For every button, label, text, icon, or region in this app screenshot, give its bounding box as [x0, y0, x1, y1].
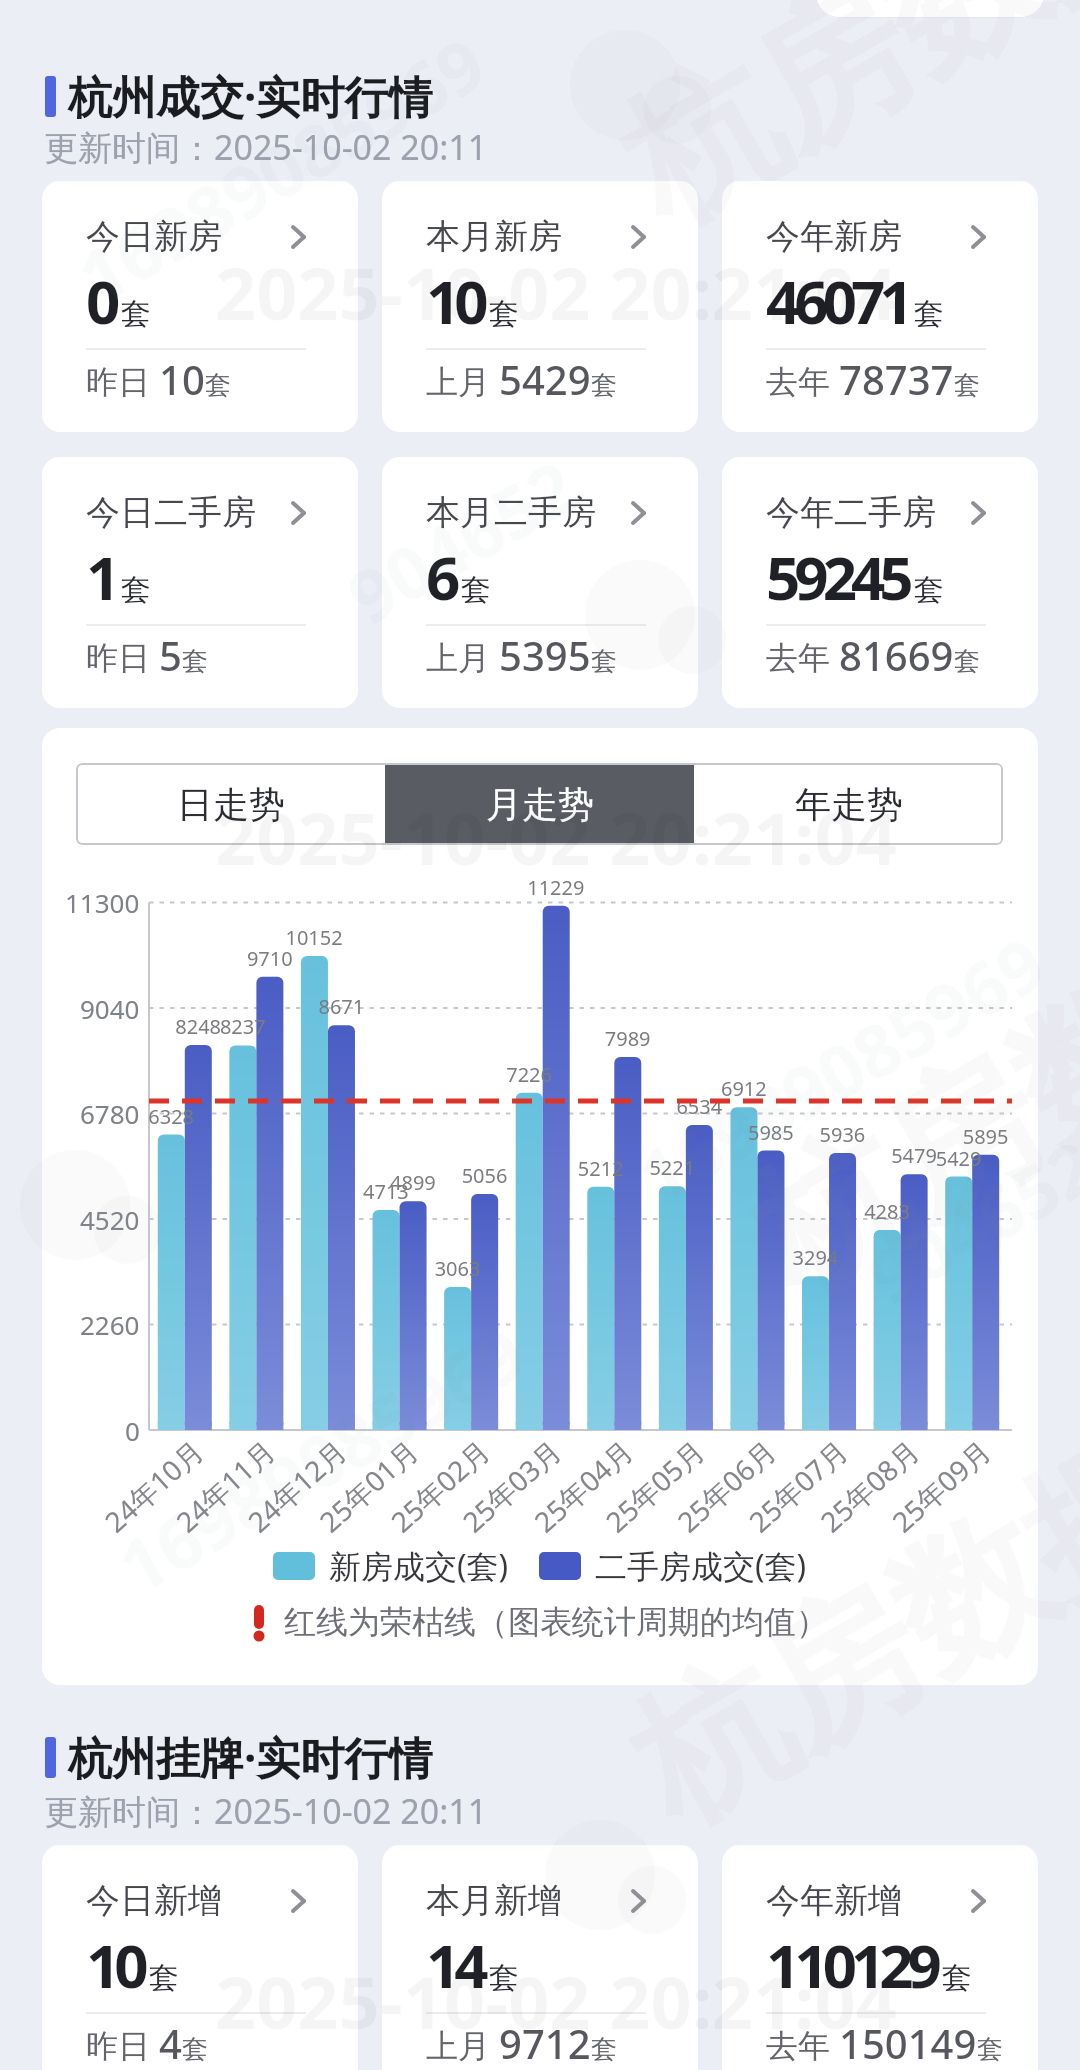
staticText: 本月新房 [426, 215, 562, 258]
staticText: 套 [461, 571, 491, 609]
staticText: 套 [954, 369, 980, 402]
staticText: 套 [182, 645, 208, 678]
staticText: 0 [86, 260, 115, 342]
staticText: 14 [426, 1924, 483, 2006]
staticText: 杭州成交·实时行情 [68, 66, 433, 126]
button[interactable]: 本月新房 [382, 181, 698, 432]
staticText: 套 [121, 295, 151, 333]
staticText: 套 [954, 645, 980, 678]
staticText: 年走势 [795, 782, 903, 827]
staticText: 今日二手房 [86, 491, 256, 534]
staticText: 上月 [426, 359, 499, 403]
staticText: 本月新增 [426, 1879, 562, 1922]
staticText: 套 [182, 2033, 208, 2066]
staticText: 更新时间：2025-10-02 20:11 [44, 124, 488, 170]
staticText: 套 [977, 2033, 986, 2066]
staticText: 套 [914, 295, 944, 333]
staticText: 月走势 [486, 782, 594, 827]
staticText: 上月 [426, 635, 499, 679]
button[interactable]: 今年新房 [722, 181, 1038, 432]
staticText: 去年 [766, 359, 839, 403]
staticText: 今年二手房 [766, 491, 936, 534]
staticText: 套 [591, 2033, 617, 2066]
staticText: 150149 [839, 2016, 977, 2070]
staticText: 套 [591, 369, 617, 402]
button[interactable]: 本月二手房 [382, 457, 698, 708]
staticText: 昨日 [86, 635, 159, 679]
staticText: 套 [591, 645, 617, 678]
staticText: 套 [914, 571, 944, 609]
button[interactable]: 今年新增 [722, 1845, 1038, 2070]
staticText: 去年 [766, 635, 839, 679]
button[interactable]: 今日二手房 [42, 457, 358, 708]
staticText: 日走势 [177, 782, 285, 827]
staticText: 4 [159, 2016, 182, 2070]
staticText: 10 [86, 1924, 143, 2006]
staticText: 套 [489, 1959, 519, 1997]
staticText: 今年新增 [766, 1879, 902, 1922]
staticText: 今年新房 [766, 215, 902, 258]
staticText: 套 [121, 571, 151, 609]
staticText: 10 [426, 260, 483, 342]
staticText: 套 [942, 1959, 972, 1997]
staticText: 78737 [839, 352, 954, 406]
staticText: 6 [426, 536, 455, 618]
staticText: 杭州挂牌·实时行情 [68, 1727, 433, 1787]
button[interactable]: 今日新房 [42, 181, 358, 432]
staticText: 套 [489, 295, 519, 333]
button[interactable] [815, 0, 1045, 18]
staticText: 5429 [499, 352, 591, 406]
button[interactable]: 本月新增 [382, 1845, 698, 2070]
button[interactable]: 今年二手房 [722, 457, 1038, 708]
staticText: 昨日 [86, 2023, 159, 2067]
staticText: 套 [149, 1959, 179, 1997]
staticText: 套 [205, 369, 231, 402]
staticText: 46071 [766, 260, 908, 342]
staticText: 上月 [426, 2023, 499, 2067]
staticText: 10 [159, 352, 205, 406]
staticText: 新房成交(套) [329, 1544, 509, 1588]
staticText: 二手房成交(套) [595, 1544, 807, 1588]
staticText: 59245 [766, 536, 908, 618]
staticText: 更新时间：2025-10-02 20:11 [44, 1788, 488, 1834]
staticText: 110129 [766, 1924, 936, 2006]
staticText: 去年 [766, 2023, 839, 2067]
button[interactable]: 今日新增 [42, 1845, 358, 2070]
staticText: 本月二手房 [426, 491, 596, 534]
staticText: 1 [86, 536, 115, 618]
staticText: 9712 [499, 2016, 591, 2070]
button[interactable]: 日走势 [76, 763, 385, 845]
staticText: 今日新增 [86, 1879, 222, 1922]
staticText: 5395 [499, 628, 591, 682]
staticText: 今日新房 [86, 215, 222, 258]
staticText: 红线为荣枯线（图表统计周期的均值） [284, 1602, 828, 1642]
staticText: 昨日 [86, 359, 159, 403]
button[interactable]: 年走势 [694, 763, 1003, 845]
staticText: 81669 [839, 628, 954, 682]
button[interactable]: 月走势 [385, 763, 694, 845]
staticText: 5 [159, 628, 182, 682]
